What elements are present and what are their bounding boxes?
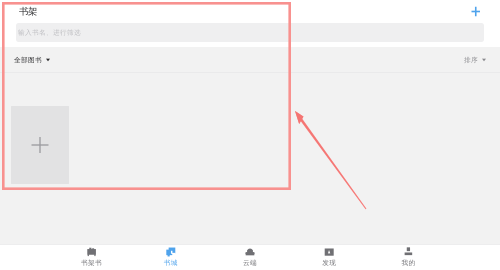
button[interactable]: 云端 (210, 244, 290, 270)
button[interactable]: 我的 (369, 244, 448, 270)
staticText: 我的 (401, 259, 415, 267)
button[interactable]: 发现 (290, 244, 369, 270)
staticText: 云端 (243, 259, 257, 267)
button[interactable]: Add book (11, 106, 69, 184)
button[interactable]: 书架书 (52, 244, 131, 270)
staticText: 全部图书 (14, 56, 42, 64)
button[interactable]: Add (467, 3, 480, 20)
staticText: 书架书 (81, 259, 102, 267)
staticText: 输入书名、进行筛选 (18, 28, 81, 37)
staticText: 发现 (322, 259, 336, 267)
staticText: 书城 (164, 259, 178, 267)
button[interactable]: 全部图书 (13, 50, 51, 70)
button[interactable]: 排序 (463, 50, 487, 70)
staticText: 排序 (464, 56, 478, 64)
staticText: 书架 (19, 6, 37, 17)
button[interactable]: 书城 (131, 244, 210, 270)
